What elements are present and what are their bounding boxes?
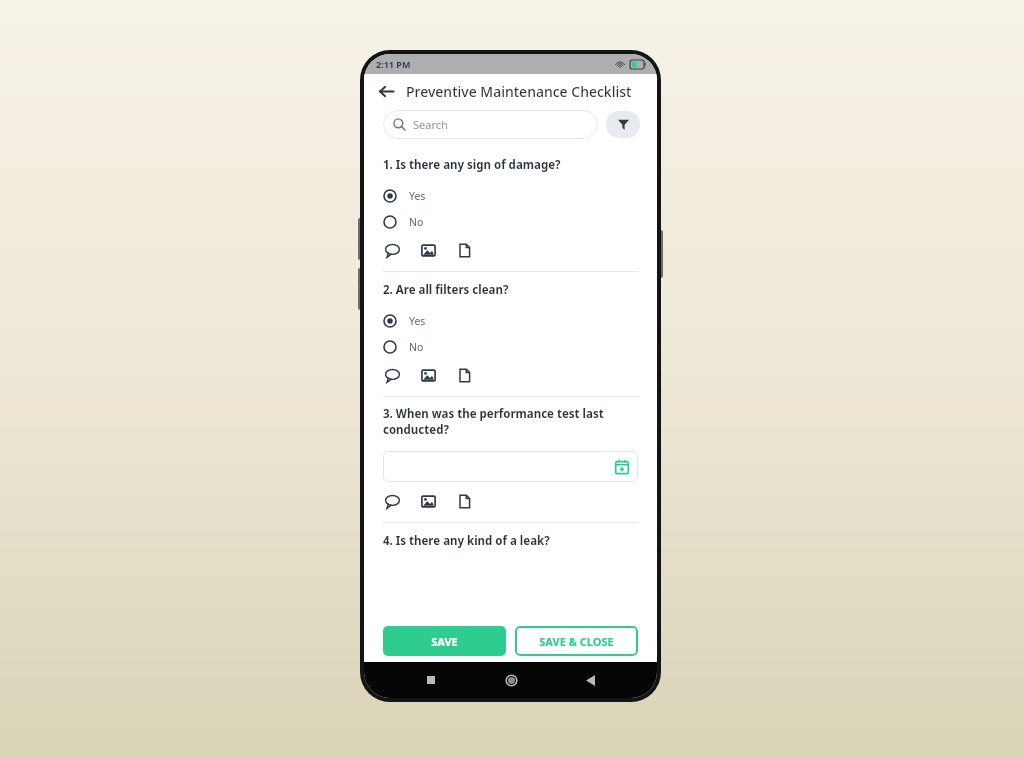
button[interactable]: Filter: [606, 111, 640, 138]
staticText: SAVE: [431, 634, 458, 649]
button[interactable]: No: [383, 215, 424, 229]
staticText: Preventive Maintenance Checklist: [406, 82, 632, 101]
staticText: 1. Is there any sign of damage?: [383, 157, 561, 173]
staticText: SAVE & CLOSE: [539, 634, 614, 649]
staticText: 3. When was the performance test last co…: [383, 406, 604, 437]
button[interactable]: No: [383, 340, 424, 354]
staticText: No: [409, 340, 424, 354]
button[interactable]: Attach file: [455, 241, 473, 259]
staticText: Yes: [409, 189, 426, 203]
button[interactable]: Add comment: [383, 492, 401, 510]
button[interactable]: Back: [577, 667, 603, 693]
button[interactable]: Yes: [383, 189, 426, 203]
other: Pick date: [615, 460, 629, 474]
button[interactable]: Pick date: [383, 451, 638, 482]
button[interactable]: SAVE & CLOSE: [515, 626, 638, 656]
button[interactable]: Yes: [383, 314, 426, 328]
staticText: 2. Are all filters clean?: [383, 282, 509, 298]
staticText: 2:11 PM: [376, 58, 411, 70]
button[interactable]: Add comment: [383, 366, 401, 384]
staticText: Yes: [409, 314, 426, 328]
button[interactable]: Add photo: [419, 492, 437, 510]
staticText: 4. Is there any kind of a leak?: [383, 533, 550, 549]
button[interactable]: Recents: [418, 667, 444, 693]
button[interactable]: Attach file: [455, 492, 473, 510]
button[interactable]: Add comment: [383, 241, 401, 259]
button[interactable]: Home: [498, 667, 524, 693]
button[interactable]: SAVE: [383, 626, 506, 656]
button[interactable]: Add photo: [419, 241, 437, 259]
staticText: Search: [413, 117, 448, 132]
staticText: No: [409, 215, 424, 229]
button[interactable]: Search: [383, 110, 598, 139]
button[interactable]: Add photo: [419, 366, 437, 384]
button[interactable]: Attach file: [455, 366, 473, 384]
button[interactable]: Back: [372, 77, 400, 105]
